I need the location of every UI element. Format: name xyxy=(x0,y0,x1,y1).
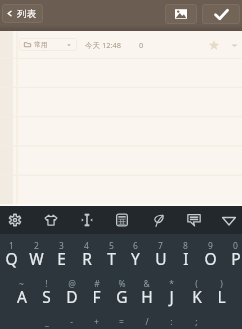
staticText: F xyxy=(92,286,101,307)
button[interactable]: Theme xyxy=(33,206,69,234)
button[interactable]: Comment xyxy=(176,206,212,234)
staticText: A xyxy=(17,286,27,307)
staticText: 7 xyxy=(158,240,163,252)
staticText: ! xyxy=(45,278,48,290)
button[interactable]: * xyxy=(159,272,184,310)
button[interactable]: ; xyxy=(184,310,209,329)
staticText: ) xyxy=(220,278,223,290)
staticText: ; xyxy=(195,316,198,328)
staticText: I xyxy=(183,248,189,269)
staticText: 6 xyxy=(133,240,138,252)
staticText: ~ xyxy=(19,278,24,290)
button[interactable]: 列表 xyxy=(2,4,43,23)
staticText: & xyxy=(143,278,150,290)
staticText: / xyxy=(145,316,149,328)
staticText: Q xyxy=(5,248,18,269)
staticText: E xyxy=(57,248,66,269)
button[interactable]: 9 xyxy=(198,234,223,272)
button[interactable]: 1 xyxy=(0,234,24,272)
button[interactable]: 0 xyxy=(223,234,242,272)
staticText: T xyxy=(107,248,116,269)
staticText: 常用 xyxy=(34,40,48,49)
staticText: O xyxy=(204,248,217,269)
button[interactable]: 5 xyxy=(99,234,124,272)
staticText: + xyxy=(94,316,99,328)
button[interactable]: _ xyxy=(34,310,59,329)
button[interactable]: Draw xyxy=(140,206,176,234)
staticText: 列表 xyxy=(17,8,36,20)
button[interactable]: ) xyxy=(209,272,234,310)
button[interactable]: = xyxy=(109,310,134,329)
staticText: % xyxy=(118,278,126,290)
staticText: P xyxy=(231,248,241,269)
button[interactable]: # xyxy=(84,272,109,310)
staticText: D xyxy=(66,286,78,307)
button[interactable]: Insert image xyxy=(165,4,197,24)
button[interactable]: - xyxy=(59,310,84,329)
staticText: ( xyxy=(195,278,198,290)
staticText: 今天 12:48 xyxy=(85,40,122,50)
staticText: _ xyxy=(45,316,49,328)
staticText: = xyxy=(119,316,124,328)
button[interactable]: Insert table xyxy=(104,206,140,234)
button[interactable]: & xyxy=(134,272,159,310)
staticText: 0 xyxy=(139,40,144,50)
button[interactable]: 常用 xyxy=(19,38,77,51)
button[interactable]: 7 xyxy=(148,234,173,272)
staticText: L xyxy=(217,286,226,307)
button[interactable]: 3 xyxy=(49,234,74,272)
staticText: : xyxy=(170,316,173,328)
staticText: # xyxy=(94,278,100,290)
staticText: B xyxy=(141,324,152,329)
button[interactable]: % xyxy=(109,272,134,310)
staticText: 8 xyxy=(183,240,188,252)
staticText: M xyxy=(189,324,204,329)
staticText: U xyxy=(155,248,167,269)
button[interactable]: 2 xyxy=(24,234,49,272)
button[interactable]: @ xyxy=(59,272,84,310)
staticText: 9 xyxy=(208,240,213,252)
button[interactable]: 4 xyxy=(74,234,99,272)
staticText: G xyxy=(116,286,128,307)
staticText: Y xyxy=(131,248,140,269)
button[interactable]: : xyxy=(159,310,184,329)
staticText: * xyxy=(169,278,174,290)
button[interactable]: Done xyxy=(202,4,240,24)
staticText: - xyxy=(70,316,73,328)
button[interactable]: ! xyxy=(34,272,59,310)
button[interactable]: Settings xyxy=(0,206,33,234)
button[interactable]: More options xyxy=(227,38,241,52)
button[interactable]: ( xyxy=(184,272,209,310)
button[interactable]: Hide keyboard xyxy=(211,206,242,234)
staticText: N xyxy=(166,324,178,329)
button[interactable]: Favourite xyxy=(206,37,222,53)
staticText: Z xyxy=(42,324,51,329)
staticText: 3 xyxy=(59,240,64,252)
staticText: R xyxy=(82,248,92,269)
staticText: @ xyxy=(68,278,76,290)
staticText: 1 xyxy=(9,240,14,252)
staticText: 4 xyxy=(84,240,89,252)
button[interactable]: Select text xyxy=(69,206,105,234)
staticText: J xyxy=(169,286,174,307)
button[interactable]: ~ xyxy=(9,272,34,310)
staticText: W xyxy=(29,248,44,269)
staticText: H xyxy=(141,286,153,307)
button[interactable]: 8 xyxy=(173,234,198,272)
staticText: S xyxy=(42,286,51,307)
button[interactable]: 6 xyxy=(123,234,148,272)
button[interactable]: + xyxy=(84,310,109,329)
staticText: 2 xyxy=(34,240,39,252)
button[interactable]: / xyxy=(134,310,159,329)
staticText: 5 xyxy=(109,240,114,252)
staticText: 0 xyxy=(233,240,238,252)
staticText: K xyxy=(192,286,202,307)
